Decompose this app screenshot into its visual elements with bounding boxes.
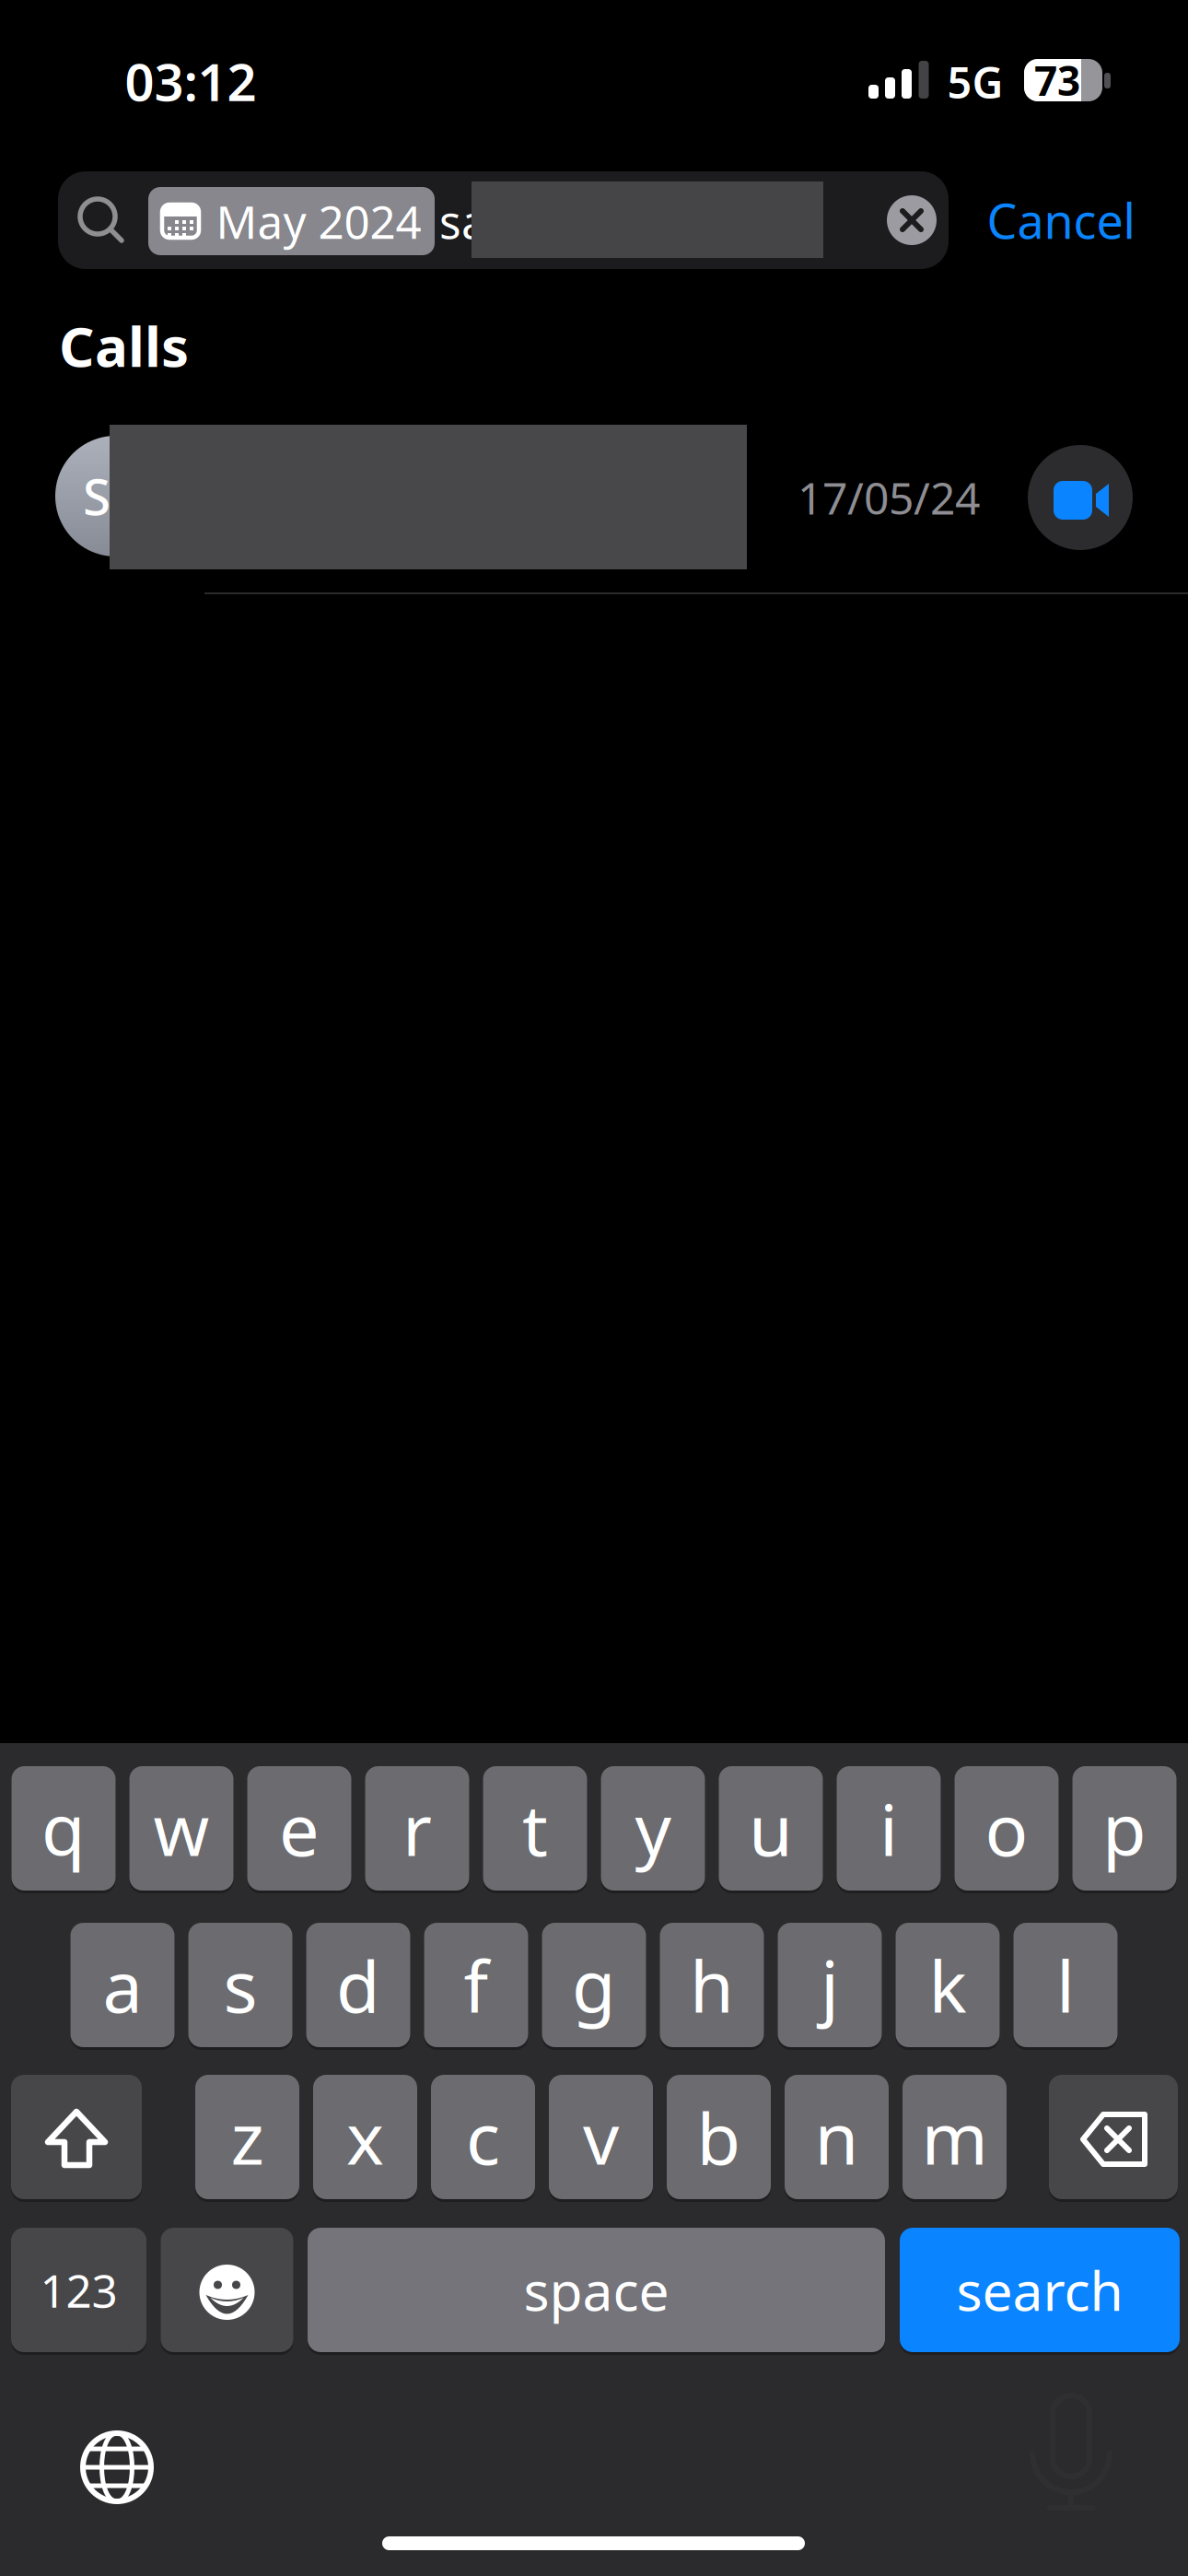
staticText: e <box>279 1781 320 1876</box>
staticText: search <box>956 2254 1123 2326</box>
button[interactable]: p <box>1072 1766 1176 1891</box>
button[interactable]: FaceTime video <box>1028 445 1133 550</box>
button[interactable]: x <box>313 2075 417 2199</box>
staticText: a <box>103 1938 142 2032</box>
button[interactable]: q <box>12 1766 116 1891</box>
staticText: n <box>815 2090 859 2184</box>
button[interactable]: h <box>660 1923 764 2047</box>
button[interactable]: m <box>903 2075 1007 2199</box>
button[interactable]: w <box>129 1766 233 1891</box>
button[interactable]: space <box>308 2228 885 2352</box>
button[interactable]: o <box>955 1766 1059 1891</box>
button[interactable]: j <box>778 1923 882 2047</box>
button[interactable]: n <box>785 2075 889 2199</box>
button[interactable]: s <box>188 1923 292 2047</box>
staticText: q <box>41 1781 86 1876</box>
staticText: 5G <box>947 53 1003 111</box>
button[interactable]: Numbers <box>11 2228 146 2352</box>
button[interactable]: Shift <box>11 2075 142 2199</box>
staticText: m <box>921 2090 988 2184</box>
button[interactable]: S <box>0 416 1188 578</box>
button[interactable]: v <box>549 2075 653 2199</box>
staticText: Calls <box>59 309 189 382</box>
button[interactable]: c <box>431 2075 535 2199</box>
staticText: 123 <box>40 2260 117 2320</box>
staticText: u <box>749 1781 793 1876</box>
staticText: space <box>524 2254 669 2326</box>
staticText: c <box>466 2090 500 2184</box>
staticText: May 2024 <box>216 191 421 251</box>
staticText: l <box>1056 1938 1075 2032</box>
button[interactable]: i <box>837 1766 941 1891</box>
button[interactable]: Next keyboard <box>76 2426 158 2509</box>
button[interactable]: Clear text <box>887 195 937 245</box>
staticText: i <box>879 1781 898 1876</box>
button[interactable]: search <box>900 2228 1180 2352</box>
button[interactable]: y <box>601 1766 705 1891</box>
button[interactable]: Delete <box>1049 2075 1178 2199</box>
staticText: r <box>402 1781 432 1876</box>
button[interactable]: d <box>306 1923 410 2047</box>
staticText: x <box>346 2090 384 2184</box>
button[interactable]: f <box>424 1923 528 2047</box>
staticText: b <box>697 2090 741 2184</box>
staticText: k <box>929 1938 967 2032</box>
staticText: y <box>635 1781 671 1876</box>
staticText: 03:12 <box>125 47 256 115</box>
staticText: s <box>223 1938 257 2032</box>
button[interactable]: a <box>70 1923 175 2047</box>
button[interactable]: z <box>195 2075 299 2199</box>
staticText: Cancel <box>987 188 1135 252</box>
button[interactable]: u <box>719 1766 823 1891</box>
button[interactable]: g <box>542 1923 646 2047</box>
staticText: j <box>821 1938 839 2032</box>
button[interactable]: r <box>365 1766 469 1891</box>
staticText: 17/05/24 <box>798 468 980 527</box>
staticText: o <box>985 1781 1028 1876</box>
button[interactable]: Cancel <box>987 188 1135 252</box>
button[interactable]: t <box>483 1766 587 1891</box>
button[interactable]: Emoji <box>161 2228 293 2352</box>
staticText: g <box>572 1938 616 2032</box>
staticText: 73 <box>1034 53 1080 107</box>
button[interactable]: l <box>1013 1923 1118 2047</box>
staticText: v <box>583 2090 619 2184</box>
button[interactable]: k <box>896 1923 1000 2047</box>
staticText: w <box>153 1781 210 1876</box>
staticText: d <box>336 1938 380 2032</box>
button[interactable]: e <box>247 1766 351 1891</box>
staticText: f <box>464 1938 489 2032</box>
staticText: h <box>690 1938 734 2032</box>
button[interactable]: b <box>667 2075 771 2199</box>
button[interactable]: May 2024 <box>148 187 435 255</box>
staticText: p <box>1102 1781 1147 1876</box>
staticText: t <box>522 1781 548 1876</box>
staticText: sa <box>439 191 487 251</box>
staticText: z <box>231 2090 264 2184</box>
staticText: S <box>83 462 111 529</box>
